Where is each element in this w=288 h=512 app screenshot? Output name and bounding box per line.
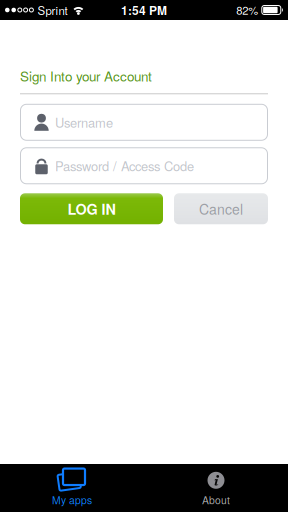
button[interactable]: Username xyxy=(20,104,268,141)
staticText: 82% xyxy=(236,2,258,18)
staticText: Sign Into your Account xyxy=(20,66,152,85)
button[interactable]: Password / Access Code xyxy=(20,147,268,184)
button[interactable]: LOG IN xyxy=(20,193,163,224)
staticText: About xyxy=(202,492,230,507)
staticText: Sprint xyxy=(37,2,67,18)
button[interactable]: My apps xyxy=(0,464,144,512)
staticText: Username xyxy=(55,113,113,131)
staticText: My apps xyxy=(52,492,92,507)
staticText: LOG IN xyxy=(67,198,115,219)
button[interactable]: About xyxy=(144,464,288,512)
staticText: Cancel xyxy=(199,199,243,219)
staticText: Password / Access Code xyxy=(55,156,194,175)
button[interactable]: Cancel xyxy=(174,193,268,224)
staticText: 1:54 PM xyxy=(121,1,167,19)
